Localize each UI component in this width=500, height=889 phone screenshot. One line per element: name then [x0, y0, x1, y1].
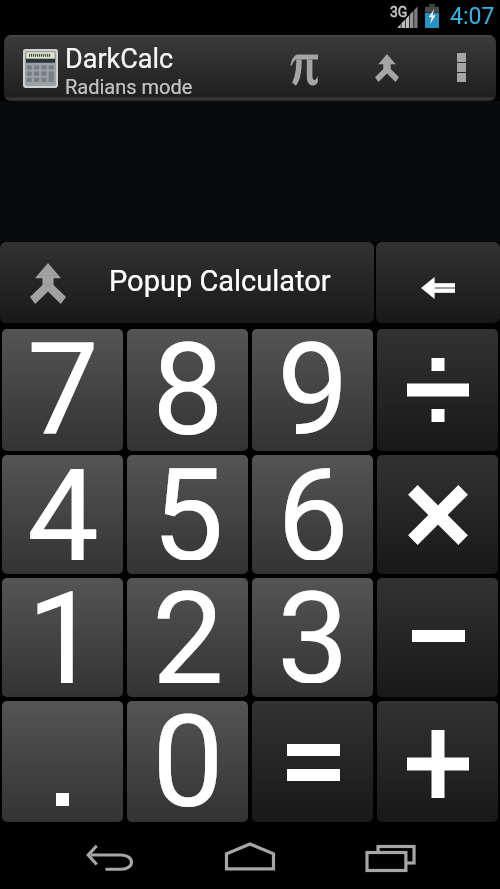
button[interactable]: [377, 455, 498, 574]
staticText: 2: [152, 578, 224, 683]
staticText: Radians mode: [65, 75, 193, 98]
button[interactable]: [377, 701, 498, 822]
button[interactable]: [377, 578, 498, 697]
button[interactable]: 8: [127, 329, 248, 451]
button[interactable]: Popup calculator: [348, 35, 426, 101]
button[interactable]: 6: [252, 455, 373, 574]
button[interactable]: Pi: [268, 35, 348, 101]
button[interactable]: Home: [225, 843, 275, 870]
button[interactable]: 3: [252, 578, 373, 697]
button[interactable]: 2: [127, 578, 248, 697]
staticText: 8: [152, 329, 224, 437]
button[interactable]: 5: [127, 455, 248, 574]
button[interactable]: Popup Calculator: [0, 242, 374, 323]
button[interactable]: [2, 701, 123, 822]
staticText: 1: [27, 578, 99, 683]
staticText: 5: [152, 455, 224, 560]
staticText: DarkCalc: [65, 43, 174, 75]
button[interactable]: Recents: [367, 846, 415, 871]
staticText: 3: [277, 578, 349, 683]
staticText: 6: [277, 455, 349, 560]
staticText: 9: [277, 329, 349, 437]
staticText: 3G: [390, 4, 408, 20]
staticText: 0: [152, 701, 224, 808]
staticText: 4:07: [450, 3, 495, 30]
button[interactable]: Back: [88, 845, 134, 870]
button[interactable]: 9: [252, 329, 373, 451]
button[interactable]: 4: [2, 455, 123, 574]
button[interactable]: More options: [426, 35, 496, 101]
staticText: 4: [27, 455, 99, 560]
button[interactable]: [252, 701, 373, 822]
button[interactable]: Backspace: [376, 242, 500, 323]
button[interactable]: 0: [127, 701, 248, 822]
button[interactable]: 7: [2, 329, 123, 451]
button[interactable]: [377, 329, 498, 451]
button[interactable]: 1: [2, 578, 123, 697]
staticText: Popup Calculator: [109, 264, 331, 298]
staticText: 7: [27, 329, 99, 437]
